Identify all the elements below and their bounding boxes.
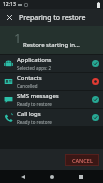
button[interactable]: Close xyxy=(4,12,15,23)
button[interactable]: Recents xyxy=(74,170,87,183)
staticText: 1 xyxy=(14,29,22,47)
staticText: SMS messages xyxy=(17,92,59,100)
staticText: CANCEL xyxy=(72,157,93,164)
button[interactable]: SMS messages xyxy=(0,91,103,108)
button[interactable]: CANCEL xyxy=(65,154,99,166)
button[interactable]: Home xyxy=(45,170,58,183)
button[interactable]: Call logs xyxy=(0,109,103,126)
staticText: Preparing to restore xyxy=(19,13,86,23)
button[interactable]: Back xyxy=(16,170,29,183)
staticText: Cancelled xyxy=(17,83,38,89)
staticText: Ready to restore xyxy=(17,119,52,125)
staticText: Contacts xyxy=(17,74,42,82)
button[interactable]: Contacts xyxy=(0,73,103,90)
staticText: Ready to restore xyxy=(17,101,52,107)
staticText: Restore starting in… xyxy=(23,41,80,49)
staticText: Selected apps: 2 xyxy=(17,65,52,71)
staticText: 12:13 xyxy=(3,1,16,8)
staticText: Call logs xyxy=(17,110,41,118)
button[interactable]: Applications xyxy=(0,55,103,72)
staticText: Applications xyxy=(17,56,52,64)
